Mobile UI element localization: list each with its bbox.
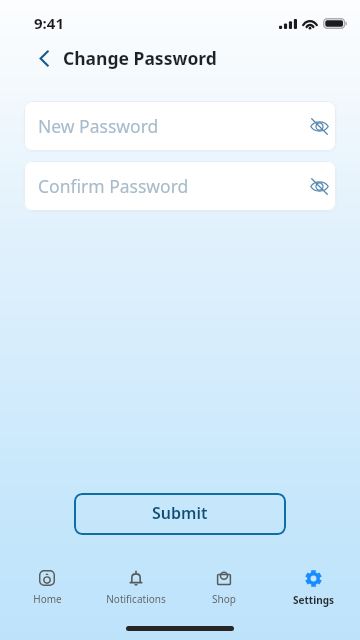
staticText: Notifications	[106, 592, 166, 606]
staticText: Change Password	[63, 46, 217, 70]
button[interactable]: Home	[5, 550, 89, 606]
button[interactable]: Settings	[271, 550, 355, 607]
button[interactable]: New Password	[24, 101, 336, 151]
staticText: Submit	[152, 502, 208, 524]
staticText: Shop	[212, 592, 236, 606]
button[interactable]: Toggle password visibility	[304, 111, 334, 141]
button[interactable]: Submit	[74, 493, 286, 535]
button[interactable]: Shop	[182, 550, 266, 606]
button[interactable]: Confirm Password	[24, 161, 336, 211]
staticText: New Password	[38, 114, 159, 138]
staticText: Settings	[293, 593, 334, 607]
button[interactable]: Notifications	[94, 550, 178, 606]
staticText: 9:41	[34, 13, 64, 33]
button[interactable]: Back	[32, 46, 56, 70]
staticText: Home	[33, 592, 62, 606]
staticText: Confirm Password	[38, 174, 189, 198]
button[interactable]: Toggle password visibility	[304, 171, 334, 201]
